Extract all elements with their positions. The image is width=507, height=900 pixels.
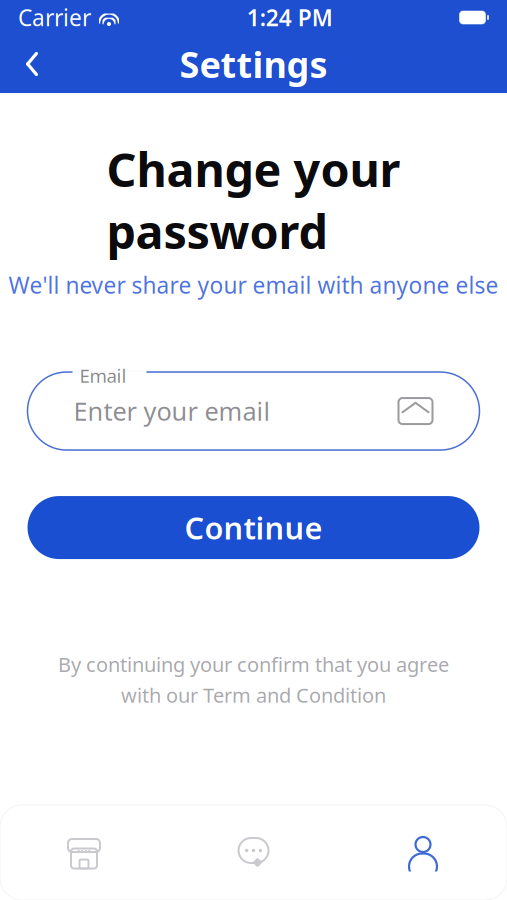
staticText: 1:24 PM bbox=[247, 2, 333, 32]
button[interactable]: Continue bbox=[27, 496, 479, 559]
staticText: By continuing your confirm that you agre… bbox=[58, 651, 449, 678]
button[interactable]: Profile bbox=[363, 817, 483, 887]
staticText: Carrier bbox=[18, 2, 91, 32]
staticText: Settings bbox=[179, 40, 327, 88]
button[interactable]: Back bbox=[8, 40, 56, 88]
button[interactable]: Messages bbox=[193, 817, 313, 887]
staticText: with our Term and Condition bbox=[121, 682, 386, 708]
staticText: We'll never share your email with anyone… bbox=[8, 270, 498, 300]
staticText: Change your password bbox=[106, 138, 400, 262]
button[interactable]: Shop bbox=[24, 817, 144, 887]
staticText: Enter your email bbox=[73, 394, 270, 428]
staticText: Continue bbox=[184, 507, 322, 548]
staticText: Email bbox=[79, 363, 126, 388]
